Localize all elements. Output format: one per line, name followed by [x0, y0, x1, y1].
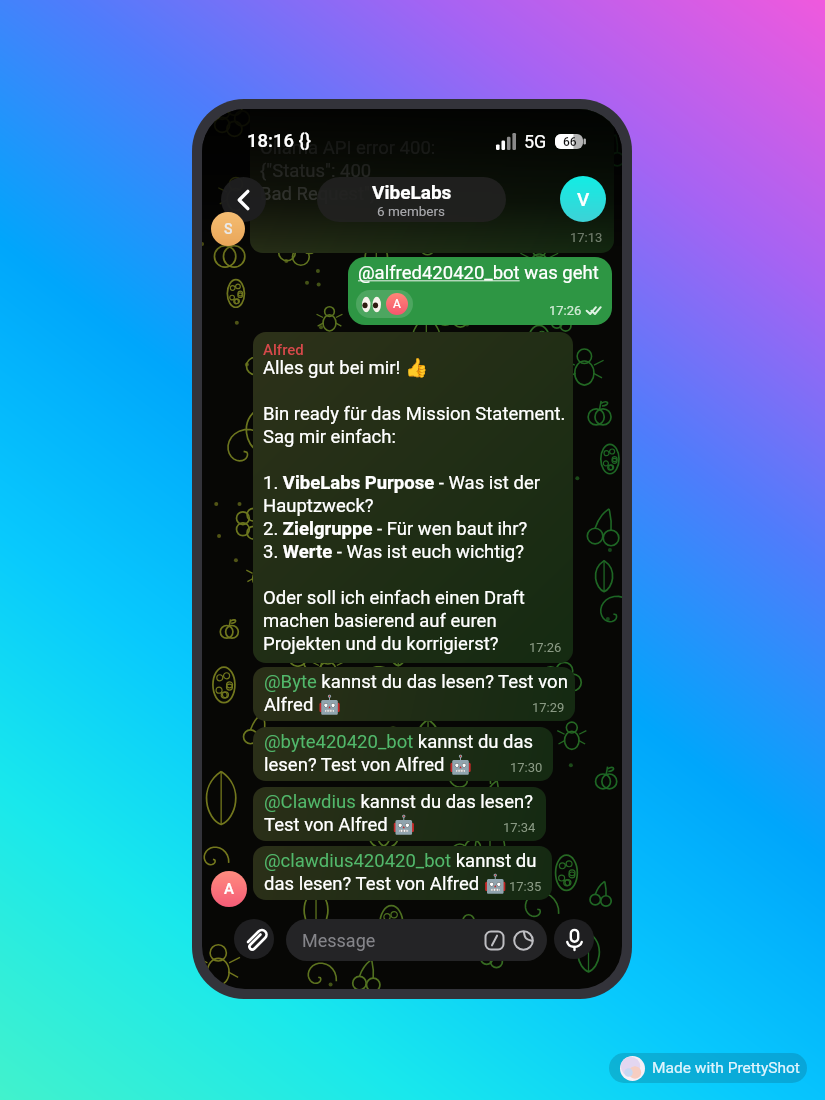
staticText: @alfred420420_bot was geht — [358, 262, 599, 284]
button[interactable]: A — [356, 290, 413, 318]
staticText: 17:26 — [549, 303, 582, 318]
staticText: @Byte kannst du das lesen? Test von Alfr… — [264, 671, 568, 716]
button[interactable]: Made with PrettyShot — [609, 1053, 807, 1083]
staticText: 66 — [563, 135, 577, 149]
button[interactable]: @byte420420_bot kannst du das lesen? Tes… — [253, 727, 553, 781]
staticText: VibeLabs — [372, 181, 452, 203]
staticText: 17:13 — [570, 230, 603, 245]
button[interactable]: VibeLabs — [317, 177, 506, 222]
button[interactable]: Attach file — [234, 919, 274, 959]
staticText: 17:35 — [509, 879, 542, 894]
staticText: A — [224, 880, 234, 898]
button[interactable]: @Byte kannst du das lesen? Test von Alfr… — [253, 667, 575, 721]
button[interactable]: Message — [286, 919, 547, 961]
staticText: 17:30 — [510, 760, 543, 775]
staticText: Alfred — [263, 341, 304, 359]
button[interactable]: V — [560, 176, 606, 222]
staticText: A — [393, 297, 401, 311]
button[interactable]: Alfred — [253, 332, 573, 663]
button[interactable]: Record voice message — [554, 919, 594, 959]
staticText: 17:34 — [503, 820, 536, 835]
button[interactable]: Back — [221, 177, 266, 222]
staticText: 18:16 {} — [247, 130, 311, 152]
staticText: V — [577, 188, 590, 210]
staticText: S — [224, 221, 233, 237]
staticText: Made with PrettyShot — [652, 1059, 800, 1077]
staticText: Message — [302, 930, 376, 951]
staticText: 17:29 — [532, 700, 565, 715]
staticText: 5G — [524, 131, 547, 152]
button[interactable]: @clawdius420420_bot kannst du das lesen?… — [253, 846, 552, 900]
button[interactable]: @Clawdius kannst du das lesen? Test von … — [253, 787, 546, 841]
staticText: Alles gut bei mir! 👍 Bin ready für das M… — [263, 357, 566, 655]
staticText: @clawdius420420_bot kannst du das lesen?… — [264, 850, 537, 895]
button[interactable]: @alfred420420_bot was geht — [348, 257, 612, 325]
staticText: Ollama API error 400: {"Status": 400 Bad… — [260, 137, 436, 205]
staticText: 6 members — [377, 203, 446, 219]
staticText: @byte420420_bot kannst du das lesen? Tes… — [264, 731, 534, 776]
staticText: @Clawdius kannst du das lesen? Test von … — [264, 791, 533, 836]
staticText: 17:26 — [529, 640, 562, 655]
